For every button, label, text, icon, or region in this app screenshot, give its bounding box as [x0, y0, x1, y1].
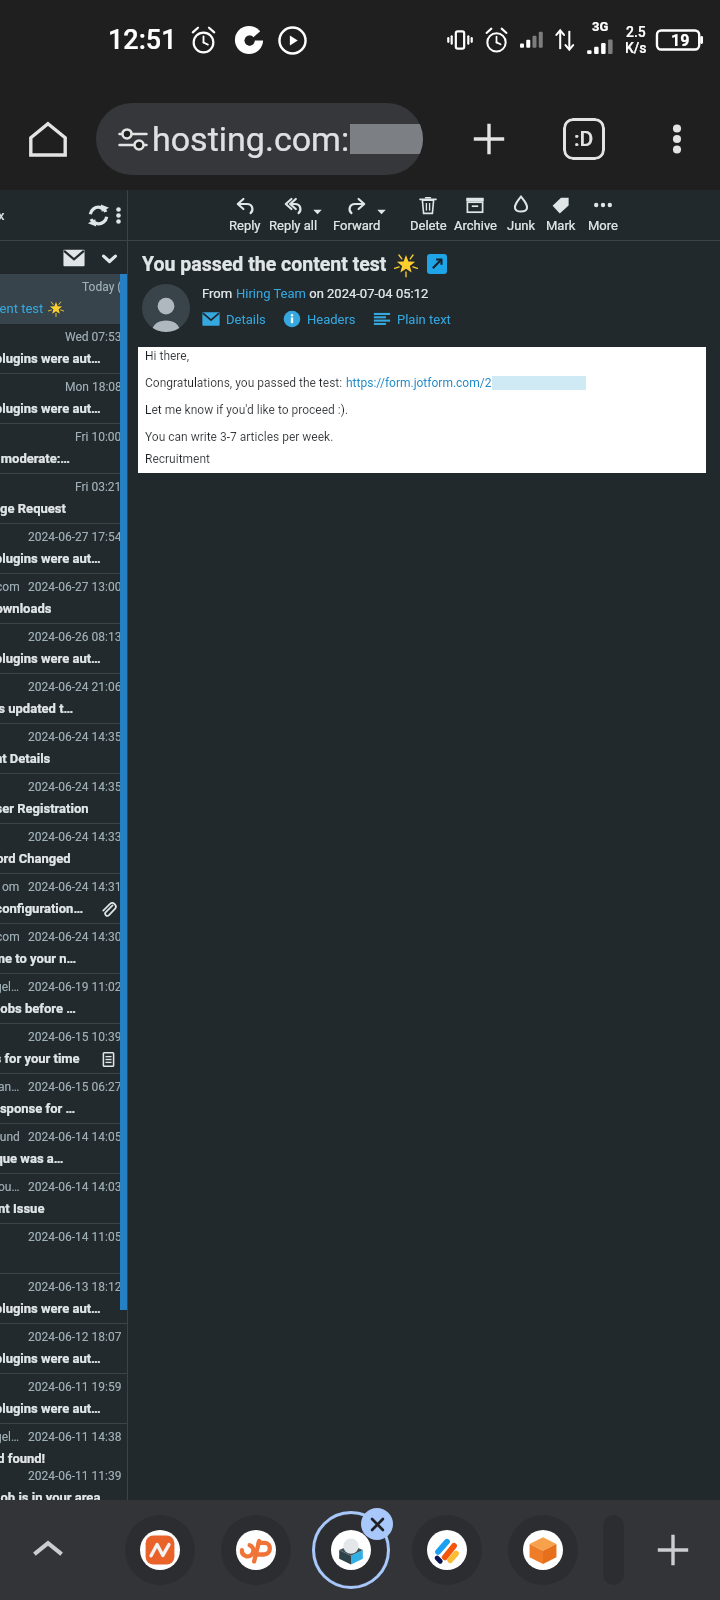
button[interactable]: 2024-06-11 19:59 [0, 1374, 127, 1423]
staticText: Wed 07:53 [65, 330, 122, 344]
button[interactable]: Fri 03:21 [0, 474, 127, 523]
staticText: New Downloads [0, 601, 52, 616]
button[interactable]: Jotform [412, 1515, 482, 1585]
button[interactable]: Wed 07:53 [0, 324, 127, 373]
button[interactable]: Mark [531, 190, 591, 240]
button[interactable]: 2024-06-24 14:35 [0, 774, 127, 823]
button[interactable]: Messages [60, 244, 88, 272]
staticText: Some plugins were aut… [0, 401, 101, 416]
button[interactable]: New tab [460, 110, 518, 168]
staticText: Today ( [82, 280, 122, 294]
button[interactable]: Tab switcher [556, 111, 612, 167]
staticText: Please moderate:… [0, 451, 70, 466]
button[interactable]: Sort [98, 247, 120, 269]
button[interactable]: Refresh [83, 200, 113, 230]
staticText: You passed the content test [0, 301, 44, 316]
button[interactable]: Details [202, 310, 266, 328]
staticText: com [0, 580, 20, 594]
button[interactable]: Close tab [361, 1508, 393, 1540]
button[interactable]: Archive [445, 190, 505, 240]
button[interactable]: 2024-06-27 17:54 [0, 524, 127, 573]
staticText: 2024-06-15 06:27 [28, 1080, 122, 1094]
button[interactable]: 2024-06-15 10:39 [0, 1024, 127, 1073]
staticText: New User Registration [0, 801, 89, 816]
button[interactable]: 2024-06-24 14:35 [0, 724, 127, 773]
button[interactable]: Package [508, 1515, 578, 1585]
button[interactable]: an… [0, 1074, 127, 1123]
staticText: Embarque was a… [0, 1151, 64, 1166]
button[interactable]: 2024-06-14 11:05 [0, 1224, 127, 1273]
button[interactable]: https://form.jotform.com/2 [346, 376, 492, 390]
button[interactable]: 2024-06-13 18:12 [0, 1274, 127, 1323]
button[interactable]: Reply [215, 190, 275, 240]
staticText: Exchange Request [0, 501, 66, 516]
button[interactable]: Roundcube Webmail [316, 1515, 386, 1585]
button[interactable]: More options [650, 112, 704, 166]
staticText: Fri 10:00 [75, 430, 122, 444]
button[interactable]: Today ( [0, 274, 127, 323]
button[interactable]: gel… [0, 974, 127, 1023]
button[interactable]: om [0, 874, 127, 923]
staticText: Password Changed [0, 851, 71, 866]
staticText: Some plugins were aut… [0, 1351, 101, 1366]
button[interactable]: gel… [0, 1424, 127, 1473]
staticText: 2024-06-12 18:07 [28, 1330, 122, 1344]
staticText: Details [226, 312, 266, 327]
staticText: Payment Issue [0, 1201, 45, 1216]
button[interactable]: 2024-06-12 18:07 [0, 1324, 127, 1373]
staticText: Hi there, [145, 349, 190, 363]
button[interactable]: Reply all [263, 190, 323, 240]
button[interactable]: hosting.com: [96, 103, 423, 175]
button[interactable]: Delete [398, 190, 458, 240]
staticText: 2024-06-15 10:39 [28, 1030, 122, 1044]
staticText: Welcome to your n… [0, 951, 77, 966]
button[interactable]: 2024-06-24 14:33 [0, 824, 127, 873]
button[interactable]: ound [0, 1124, 127, 1173]
staticText: Some plugins were aut… [0, 551, 101, 566]
staticText: Thanks for your time [0, 1051, 80, 1066]
staticText: Reply all [269, 218, 318, 233]
button[interactable]: com [0, 574, 127, 623]
staticText: 2024-06-13 18:12 [28, 1280, 122, 1294]
staticText: 2024-06-11 14:38 [28, 1430, 122, 1444]
button[interactable]: Mon 18:08 [0, 374, 127, 423]
staticText: ou… [0, 1180, 20, 1194]
button[interactable]: More [573, 190, 633, 240]
staticText: hosting.com: [152, 119, 350, 159]
button[interactable]: Forward [327, 190, 387, 240]
button[interactable]: 2024-06-26 08:13 [0, 624, 127, 673]
button[interactable]: Home [18, 109, 78, 169]
button[interactable]: Fri 10:00 [0, 424, 127, 473]
staticText: A new job is in your area [0, 1490, 101, 1505]
button[interactable]: Headers [283, 310, 356, 328]
button[interactable]: com [0, 924, 127, 973]
staticText: Headers [307, 312, 356, 327]
button[interactable]: Junk [491, 190, 551, 240]
staticText: Some plugins were aut… [0, 351, 101, 366]
staticText: 3G [592, 19, 609, 34]
button[interactable]: Open in new window [427, 254, 447, 274]
staticText: 2024-06-11 11:39 [28, 1469, 122, 1483]
staticText: You passed the content test [142, 253, 387, 276]
staticText: Reply [229, 218, 261, 233]
button[interactable]: 2024-06-24 21:06 [0, 674, 127, 723]
button[interactable]: Namecheap [125, 1515, 195, 1585]
button[interactable]: cPanel [221, 1515, 291, 1585]
button[interactable]: Expand tab strip [20, 1522, 76, 1578]
staticText: :D [574, 127, 594, 152]
staticText: You can write 3-7 articles per week. [145, 430, 334, 444]
button[interactable]: 2024-06-11 11:39 [0, 1463, 127, 1512]
button[interactable]: ou… [0, 1174, 127, 1223]
button[interactable]: Plain text [373, 310, 451, 328]
staticText: 2024-06-27 17:54 [28, 530, 122, 544]
button[interactable]: Options [106, 203, 130, 227]
staticText: Mark [546, 218, 576, 233]
staticText: Fri 03:21 [75, 480, 122, 494]
button[interactable]: Hiring Team [236, 286, 306, 301]
staticText: 2024-06-24 14:31 [28, 880, 122, 894]
staticText: From [202, 286, 236, 301]
staticText: 2.5 [626, 24, 646, 40]
staticText: Forward [333, 218, 381, 233]
button[interactable]: New tab [644, 1521, 702, 1579]
